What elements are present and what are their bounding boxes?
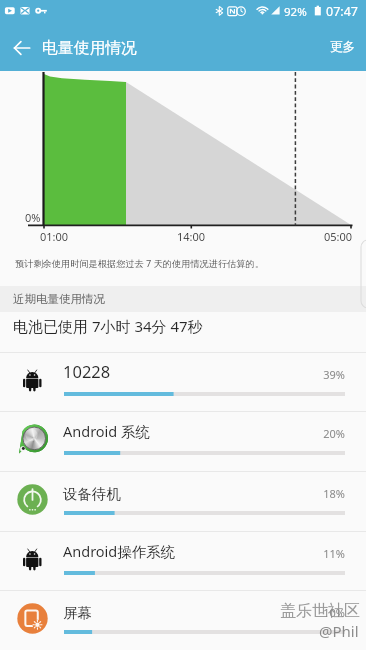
- staticText: 10%: [300, 605, 345, 620]
- staticText: 92%: [284, 4, 307, 20]
- button[interactable]: 屏幕: [0, 590, 366, 650]
- staticText: 01:00: [40, 229, 69, 244]
- button[interactable]: Android 系统: [0, 411, 366, 471]
- staticText: 盖乐世社区: [280, 601, 360, 621]
- staticText: 电量使用情况: [42, 38, 137, 58]
- staticText: 11%: [300, 546, 345, 561]
- button[interactable]: Android操作系统: [0, 531, 366, 591]
- staticText: 10228: [63, 360, 111, 382]
- button[interactable]: 10228: [0, 352, 366, 412]
- staticText: 设备待机: [63, 485, 121, 503]
- staticText: 屏幕: [63, 604, 92, 622]
- staticText: 18%: [300, 486, 345, 501]
- staticText: 预计剩余使用时间是根据您过去 7 天的使用情况进行估算的。: [15, 257, 264, 270]
- button[interactable]: Back: [4, 30, 40, 66]
- staticText: 20%: [300, 426, 345, 441]
- button[interactable]: 更多: [330, 39, 356, 55]
- staticText: 39%: [300, 367, 345, 382]
- staticText: 近期电量使用情况: [13, 292, 105, 306]
- staticText: 电池已使用 7小时 34分 47秒: [13, 316, 203, 336]
- staticText: 07:47: [326, 3, 358, 20]
- staticText: Android操作系统: [63, 541, 176, 561]
- staticText: 0%: [25, 210, 41, 225]
- staticText: 05:00: [324, 229, 353, 244]
- staticText: 14:00: [177, 229, 206, 244]
- staticText: @Phil: [319, 621, 359, 641]
- button[interactable]: 设备待机: [0, 471, 366, 531]
- staticText: Android 系统: [63, 421, 151, 441]
